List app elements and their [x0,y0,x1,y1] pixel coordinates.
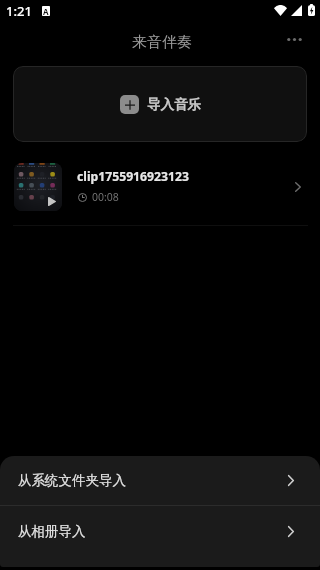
button[interactable]: 从系统文件夹导入 [0,456,320,505]
staticText: 从系统文件夹导入 [18,472,126,489]
staticText: clip1755916923123 [77,168,189,185]
staticText: 从相册导入 [18,523,86,540]
button[interactable]: 导入音乐 [13,66,307,142]
button[interactable]: 从相册导入 [0,506,320,557]
staticText: 来音伴奏 [132,33,192,52]
staticText: 1:21 [6,2,32,20]
button[interactable]: More options [279,22,314,56]
staticText: A [43,6,49,16]
staticText: 00:08 [92,190,119,204]
button[interactable]: clip1755916923123 [14,163,301,211]
staticText: 导入音乐 [147,96,201,113]
